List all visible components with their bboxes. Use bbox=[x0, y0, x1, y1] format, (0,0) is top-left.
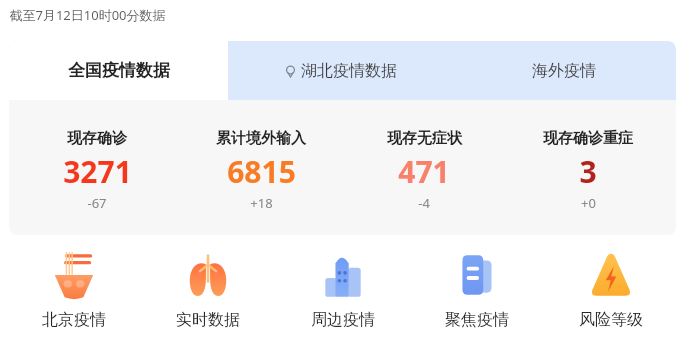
staticText: 湖北疫情数据 bbox=[301, 61, 397, 81]
staticText: 6815 bbox=[227, 151, 296, 192]
button[interactable]: 风险等级 bbox=[551, 249, 671, 330]
button[interactable]: 全国疫情数据 bbox=[9, 41, 228, 100]
staticText: -4 bbox=[418, 194, 430, 212]
staticText: 全国疫情数据 bbox=[68, 60, 170, 81]
staticText: 实时数据 bbox=[176, 310, 240, 330]
button[interactable]: 周边疫情 bbox=[283, 249, 403, 330]
staticText: 海外疫情 bbox=[532, 61, 596, 81]
button[interactable]: 海外疫情 bbox=[452, 41, 676, 100]
button[interactable]: 现存无症状 bbox=[349, 129, 499, 212]
staticText: 现存确诊重症 bbox=[543, 129, 633, 148]
staticText: 聚焦疫情 bbox=[445, 310, 509, 330]
button[interactable]: 现存确诊重症 bbox=[513, 129, 663, 212]
staticText: +0 bbox=[581, 194, 596, 212]
staticText: 风险等级 bbox=[579, 310, 643, 330]
staticText: 3 bbox=[579, 151, 597, 192]
staticText: 累计境外输入 bbox=[216, 129, 306, 148]
button[interactable]: 北京疫情 bbox=[14, 249, 134, 330]
staticText: 3271 bbox=[63, 151, 132, 192]
staticText: 现存无症状 bbox=[387, 129, 462, 148]
staticText: 北京疫情 bbox=[42, 310, 106, 330]
staticText: +18 bbox=[250, 194, 273, 212]
button[interactable]: 现存确诊 bbox=[22, 129, 172, 212]
staticText: 现存确诊 bbox=[67, 129, 127, 148]
button[interactable]: 湖北疫情数据 bbox=[228, 41, 452, 100]
staticText: 471 bbox=[398, 151, 450, 192]
button[interactable]: 累计境外输入 bbox=[186, 129, 336, 212]
button[interactable]: 聚焦疫情 bbox=[417, 249, 537, 330]
staticText: -67 bbox=[87, 194, 107, 212]
staticText: 周边疫情 bbox=[311, 310, 375, 330]
staticText: 截至7月12日10时00分数据 bbox=[9, 6, 166, 24]
button[interactable]: 实时数据 bbox=[148, 249, 268, 330]
